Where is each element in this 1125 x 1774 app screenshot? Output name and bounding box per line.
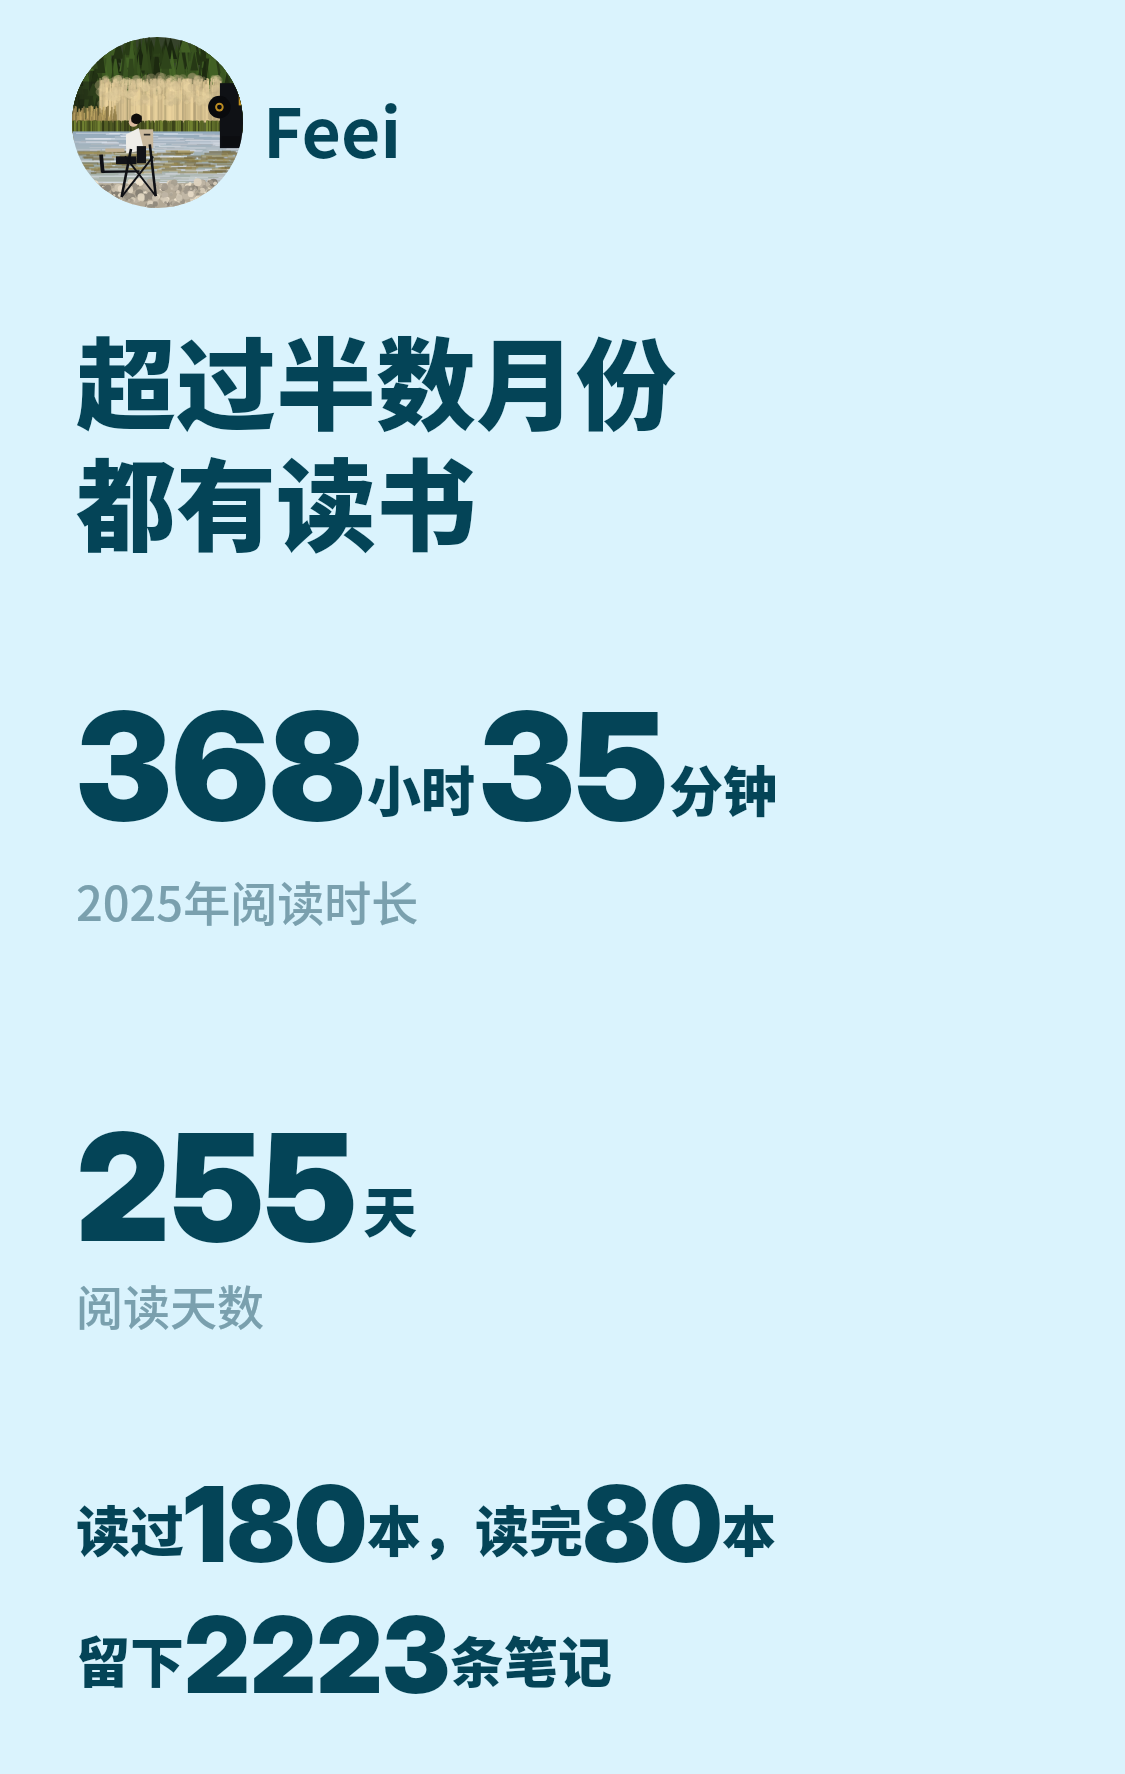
- staticText: 小时: [367, 749, 475, 827]
- other: Profile photo: [72, 37, 243, 208]
- staticText: 180: [184, 1460, 367, 1587]
- staticText: 分钟: [669, 749, 777, 827]
- staticText: 都有读书: [76, 427, 476, 572]
- button[interactable]: Profile photo: [72, 37, 410, 208]
- staticText: 本，读完: [367, 1489, 583, 1567]
- staticText: 超过半数月份: [76, 306, 676, 451]
- button[interactable]: 读过: [76, 1460, 776, 1718]
- staticText: 留下: [76, 1620, 184, 1698]
- staticText: 读过: [76, 1489, 184, 1567]
- staticText: 255: [76, 1097, 358, 1277]
- staticText: 368: [76, 676, 367, 856]
- staticText: 80: [583, 1460, 722, 1587]
- button[interactable]: 超过半数月份: [76, 306, 676, 596]
- staticText: 天: [363, 1170, 417, 1248]
- button[interactable]: 368: [76, 676, 777, 934]
- staticText: 条笔记: [450, 1620, 612, 1698]
- staticText: 35: [479, 676, 669, 856]
- staticText: 2025年阅读时长: [76, 866, 419, 934]
- staticText: 阅读天数: [76, 1270, 264, 1338]
- staticText: 2223: [184, 1591, 450, 1718]
- button[interactable]: 255: [76, 1097, 417, 1345]
- staticText: Feei: [263, 79, 402, 177]
- staticText: 本: [722, 1489, 776, 1567]
